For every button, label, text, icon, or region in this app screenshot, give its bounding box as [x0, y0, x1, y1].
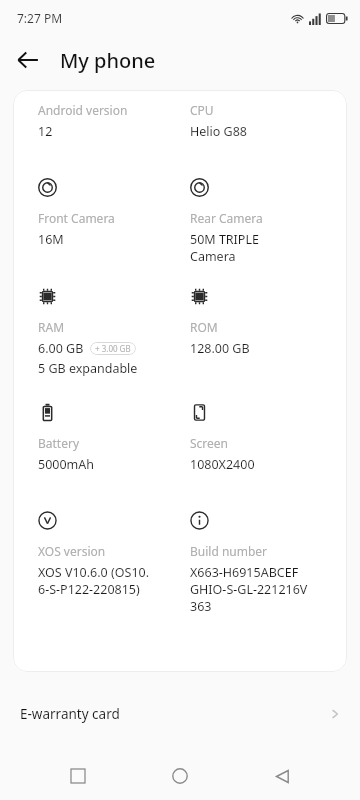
staticText: 5000mAh [38, 456, 95, 473]
staticText: CPU [190, 102, 214, 118]
staticText: Helio G88 [190, 123, 247, 140]
staticText: 16M [38, 231, 64, 248]
staticText: Front Camera [38, 210, 115, 226]
staticText: X663-H6915ABCEF GHIO-S-GL-221216V 363 [190, 564, 308, 615]
button[interactable]: Build number [190, 511, 333, 615]
staticText: Build number [190, 543, 268, 559]
staticText: 5 GB expandable [38, 360, 138, 377]
staticText: XOS version [38, 543, 106, 559]
button[interactable]: Screen [190, 403, 333, 473]
button[interactable]: XOS version [38, 511, 180, 598]
button[interactable]: Back [258, 752, 306, 800]
staticText: 1080X2400 [190, 456, 255, 473]
button[interactable]: Recents [54, 752, 102, 800]
staticText: My phone [60, 47, 156, 74]
button[interactable]: E-warranty card [0, 692, 360, 736]
staticText: Rear Camera [190, 210, 263, 226]
button[interactable]: Back [6, 38, 50, 82]
staticText: 128.00 GB [190, 340, 250, 357]
staticText: E-warranty card [20, 705, 120, 723]
button[interactable]: RAM [38, 287, 180, 377]
button[interactable]: CPU [190, 102, 333, 140]
staticText: Battery [38, 435, 80, 451]
button[interactable]: Home [156, 752, 204, 800]
button[interactable]: Android version [38, 102, 180, 140]
staticText: + 3.00 GB [95, 343, 131, 354]
staticText: 7:27 PM [17, 10, 63, 26]
button[interactable]: ROM [190, 287, 333, 357]
staticText: Screen [190, 435, 229, 451]
button[interactable]: Battery [38, 403, 180, 473]
staticText: RAM [38, 319, 65, 335]
button[interactable]: Front Camera [38, 178, 180, 248]
staticText: ROM [190, 319, 218, 335]
button[interactable]: Rear Camera [190, 178, 333, 265]
staticText: Android version [38, 102, 128, 118]
staticText: 12 [38, 123, 53, 140]
staticText: XOS V10.6.0 (OS10. 6-S-P122-220815) [38, 564, 150, 598]
staticText: 6.00 GB [38, 340, 84, 357]
staticText: 50M TRIPLE Camera [190, 231, 259, 265]
